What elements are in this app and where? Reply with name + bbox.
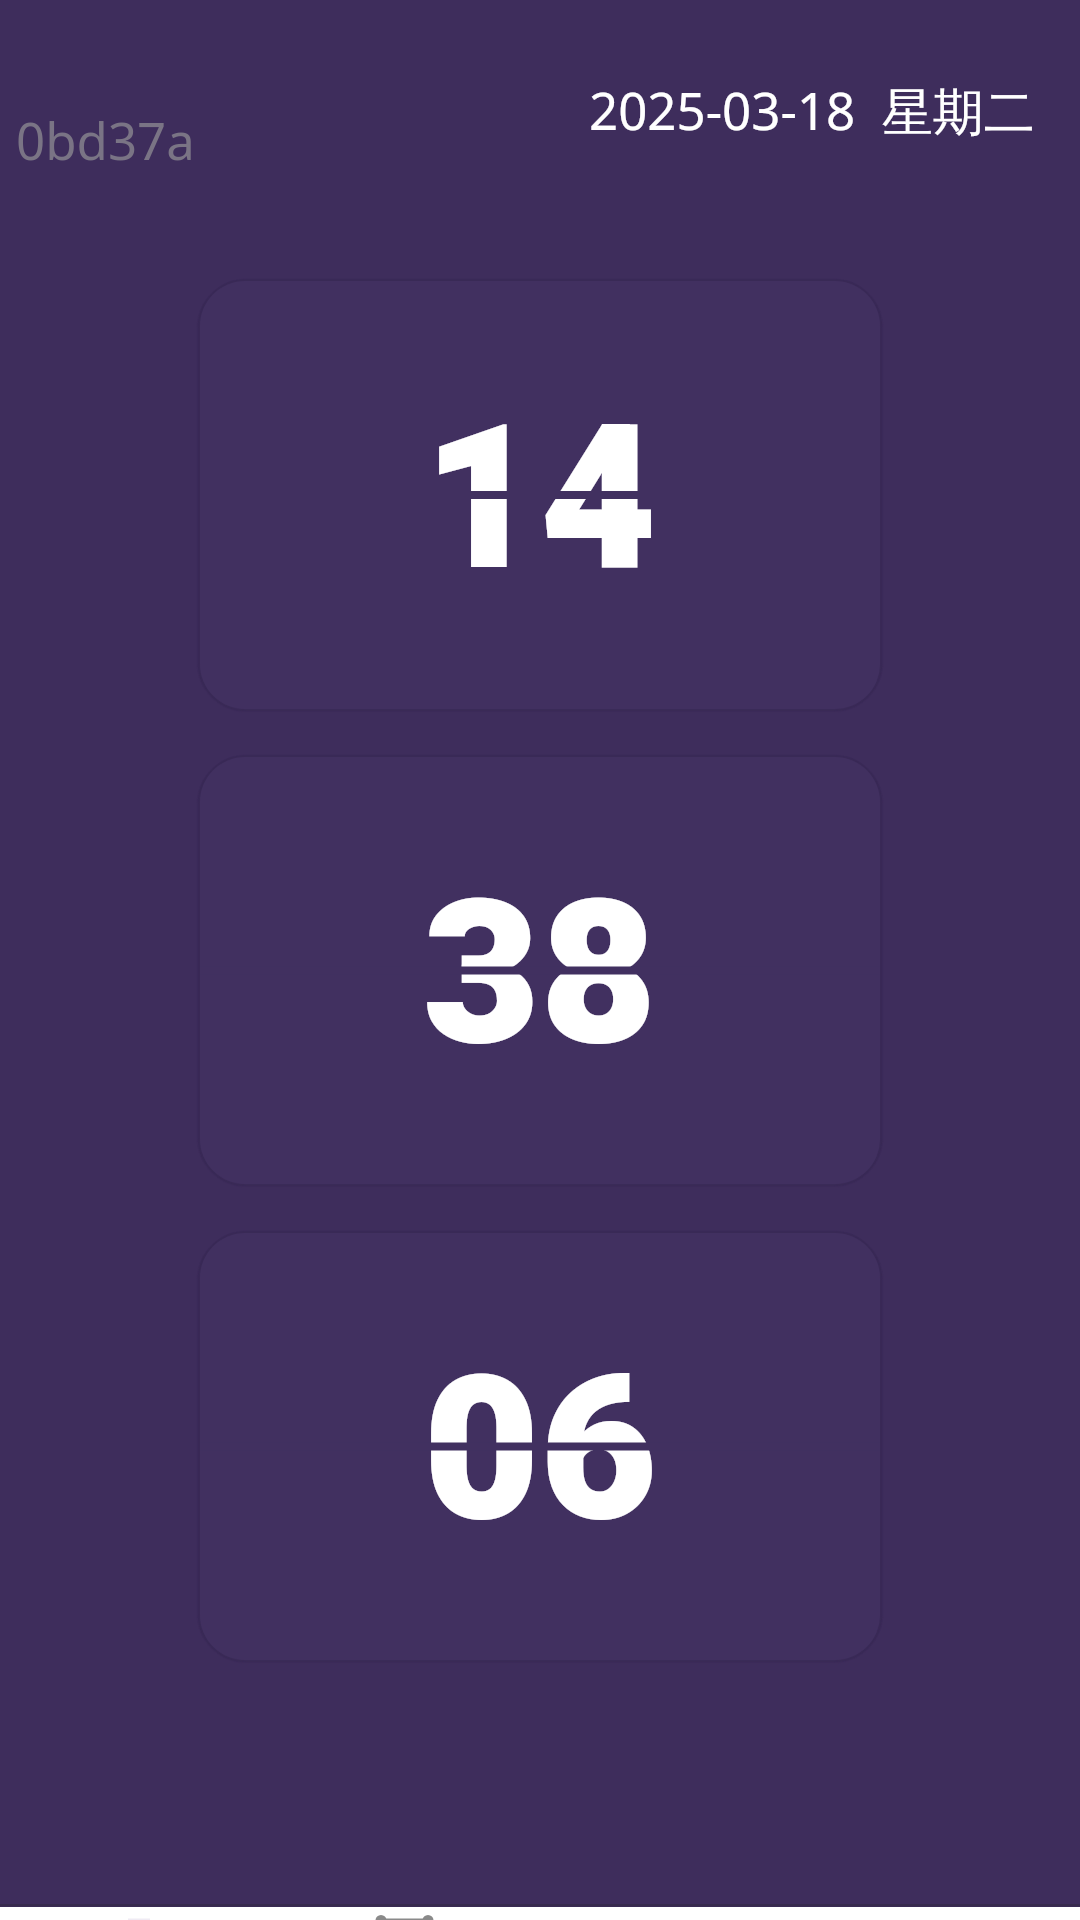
button[interactable]: 06 <box>200 1233 880 1660</box>
button[interactable]: 38 <box>200 757 880 1184</box>
staticText: 14 <box>423 356 657 651</box>
staticText: 38 <box>423 831 657 1126</box>
staticText: 0bd37a <box>16 105 195 174</box>
staticText: 2025-03-18 星期二 <box>589 75 1035 145</box>
staticText: 06 <box>423 1307 657 1602</box>
button[interactable]: 14 <box>200 281 880 709</box>
button[interactable]: Home <box>360 1907 450 1920</box>
button[interactable]: Back <box>118 1907 158 1920</box>
